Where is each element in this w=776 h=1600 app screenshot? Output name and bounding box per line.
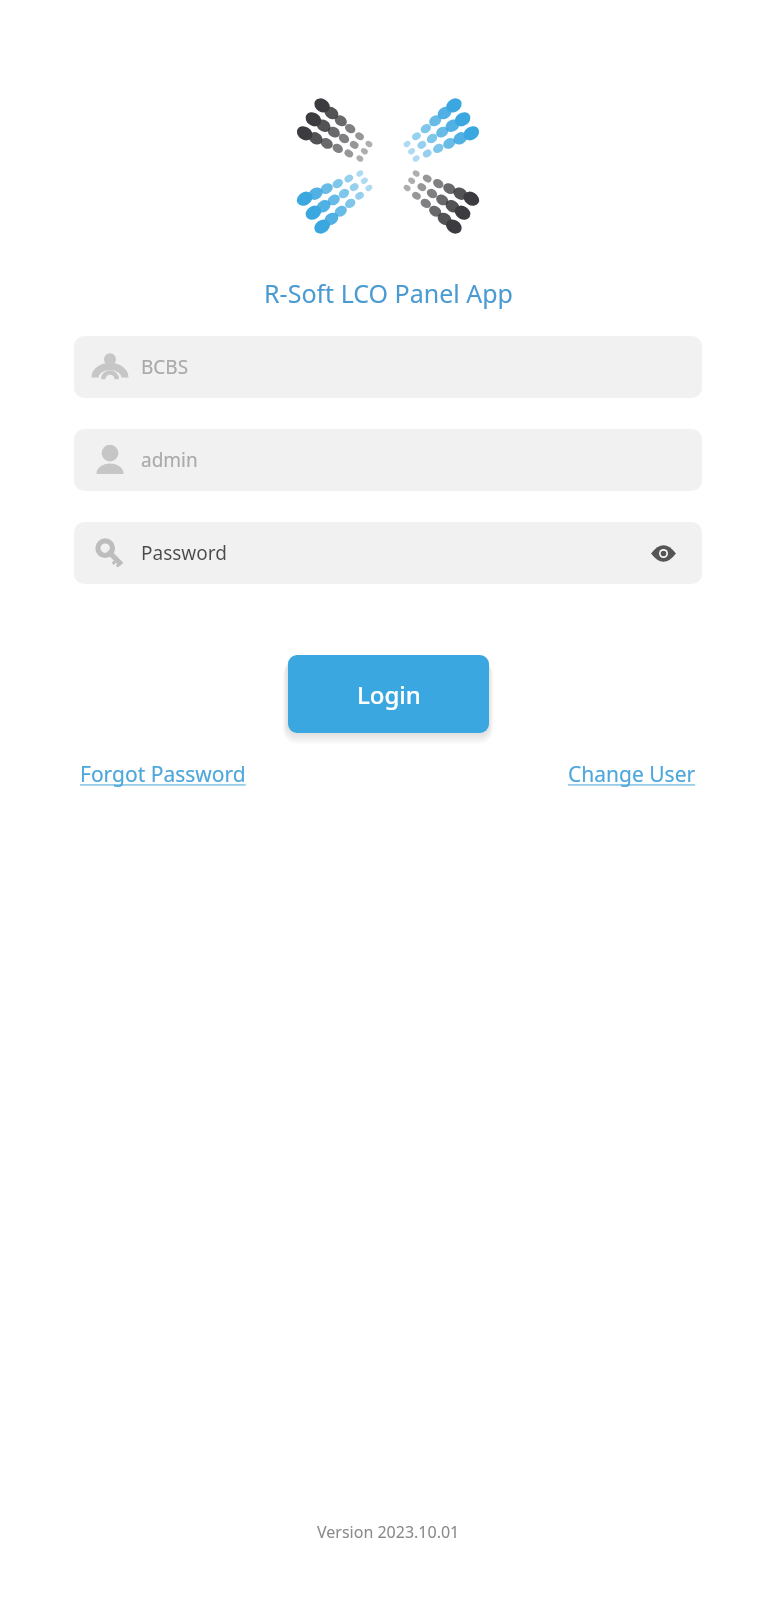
button[interactable]: Change User bbox=[562, 756, 702, 793]
other: Username bbox=[93, 443, 127, 477]
staticText: R-Soft LCO Panel App bbox=[264, 276, 513, 310]
other: R-Soft logo bbox=[300, 78, 476, 254]
staticText: admin bbox=[141, 447, 198, 473]
staticText: Forgot Password bbox=[80, 760, 246, 789]
button[interactable]: Username bbox=[74, 429, 702, 491]
button[interactable]: Forgot Password bbox=[74, 756, 252, 793]
staticText: Version 2023.10.01 bbox=[317, 1521, 460, 1543]
staticText: Change User bbox=[568, 760, 696, 789]
staticText: BCBS bbox=[141, 354, 189, 380]
button[interactable]: Login bbox=[288, 655, 489, 733]
staticText: Login bbox=[357, 678, 421, 711]
staticText: Password bbox=[141, 540, 227, 566]
button[interactable]: Password bbox=[74, 522, 702, 584]
button[interactable]: Show password bbox=[646, 536, 680, 570]
button[interactable]: Company bbox=[74, 336, 702, 398]
other: Password bbox=[93, 536, 127, 570]
other: Company bbox=[93, 350, 127, 384]
